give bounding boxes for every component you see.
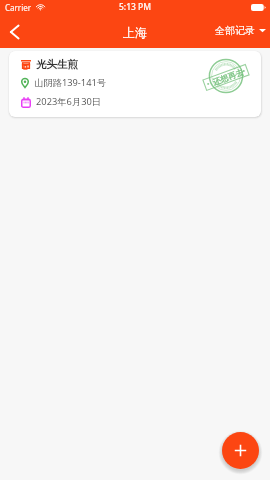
staticText: 5:13 PM bbox=[119, 1, 152, 13]
staticText: 全部记录 bbox=[215, 24, 255, 37]
button[interactable]: 光头生煎 bbox=[9, 51, 261, 117]
button[interactable]: Add bbox=[222, 432, 259, 469]
staticText: Carrier bbox=[5, 2, 32, 13]
staticText: 上海 bbox=[123, 25, 147, 40]
button[interactable]: 全部记录 bbox=[214, 26, 267, 43]
button[interactable]: Back bbox=[0, 20, 30, 48]
staticText: 光头生煎 bbox=[36, 58, 78, 71]
staticText: 2023年6月30日 bbox=[36, 95, 102, 108]
staticText: 山阴路139-141号 bbox=[34, 76, 107, 89]
staticText: 还想再去 bbox=[211, 67, 245, 87]
